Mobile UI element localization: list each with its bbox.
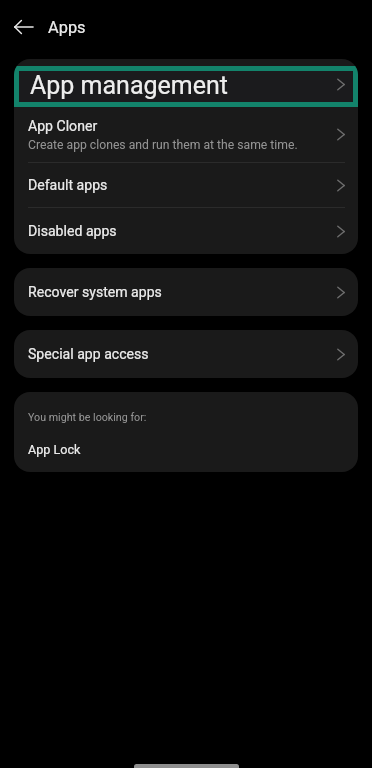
- button[interactable]: Back: [6, 9, 42, 45]
- staticText: You might be looking for:: [28, 411, 147, 424]
- button[interactable]: App Cloner: [14, 107, 358, 162]
- staticText: Disabled apps: [28, 223, 117, 240]
- button[interactable]: Special app access: [14, 330, 358, 378]
- button[interactable]: App Lock: [28, 442, 81, 457]
- staticText: Create app clones and run them at the sa…: [28, 138, 298, 152]
- staticText: App Lock: [28, 442, 81, 457]
- button[interactable]: Recover system apps: [14, 268, 358, 316]
- staticText: Apps: [48, 18, 86, 37]
- button[interactable]: App management: [19, 71, 353, 102]
- staticText: Default apps: [28, 177, 108, 194]
- button[interactable]: Disabled apps: [14, 208, 358, 254]
- staticText: App Cloner: [28, 118, 98, 135]
- staticText: App management: [30, 71, 337, 100]
- staticText: Recover system apps: [28, 284, 162, 301]
- staticText: Special app access: [28, 346, 149, 363]
- button[interactable]: Default apps: [14, 163, 358, 207]
